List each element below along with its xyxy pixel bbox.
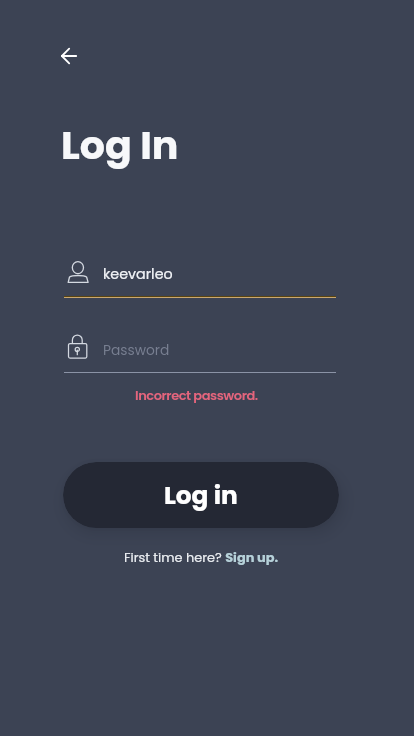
button[interactable]: First time here? Sign up. <box>124 548 279 566</box>
staticText: keevarleo <box>103 264 173 284</box>
staticText: Incorrect password. <box>135 386 258 404</box>
staticText: Password <box>103 341 170 360</box>
button[interactable]: Password <box>64 329 336 373</box>
button[interactable]: Back <box>47 34 90 77</box>
staticText: Log in <box>164 478 238 513</box>
button[interactable]: Log in <box>63 462 339 528</box>
button[interactable]: keevarleo <box>64 254 336 298</box>
staticText: Log In <box>61 118 179 173</box>
